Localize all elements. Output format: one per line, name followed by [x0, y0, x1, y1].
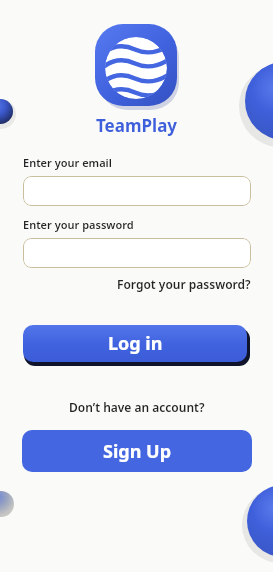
- button[interactable]: [23, 238, 251, 268]
- button[interactable]: [23, 176, 251, 206]
- button[interactable]: Forgot your password?: [117, 276, 251, 292]
- button[interactable]: Log in: [23, 325, 250, 366]
- staticText: Don’t have an account?: [69, 399, 205, 415]
- staticText: Sign Up: [103, 439, 172, 464]
- staticText: Log in: [108, 331, 163, 356]
- staticText: TeamPlay: [96, 114, 178, 137]
- staticText: Enter your password: [23, 217, 134, 232]
- staticText: Enter your email: [23, 155, 112, 170]
- button[interactable]: Sign Up: [22, 430, 252, 472]
